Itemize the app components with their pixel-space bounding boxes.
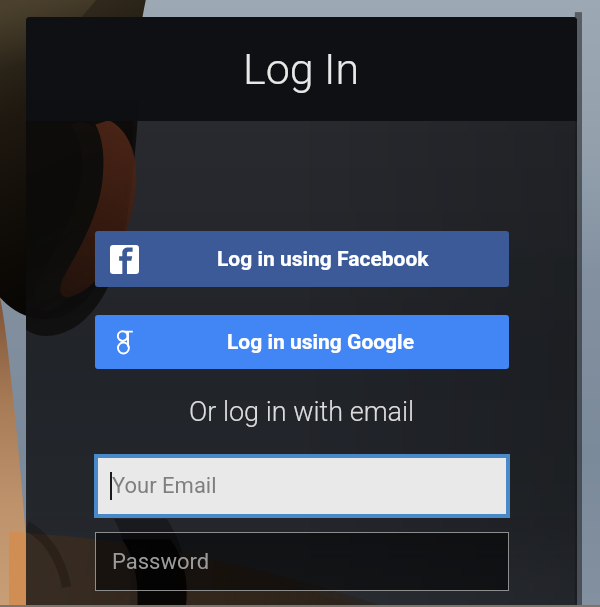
staticText: Log In: [243, 44, 360, 94]
button[interactable]: Log in using Google: [95, 315, 509, 369]
staticText: Password: [112, 549, 210, 575]
button[interactable]: Password: [95, 532, 509, 591]
button[interactable]: Log in using Facebook: [95, 231, 509, 287]
button[interactable]: Your Email: [98, 458, 506, 514]
staticText: Log in using Google: [227, 330, 414, 355]
staticText: Or log in with email: [189, 396, 415, 428]
staticText: Log in using Facebook: [217, 247, 429, 272]
staticText: Your Email: [112, 473, 217, 499]
